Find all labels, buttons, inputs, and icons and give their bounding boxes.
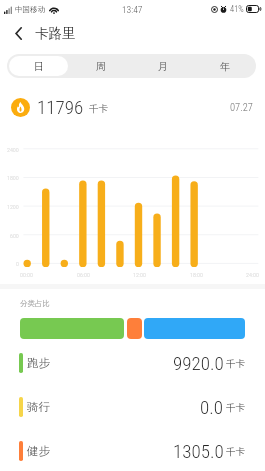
staticText: 1305.0: [173, 440, 224, 462]
staticText: 分类占比: [20, 299, 50, 308]
staticText: 健步: [27, 444, 50, 458]
button[interactable]: 跑步: [0, 341, 265, 385]
staticText: 跑步: [27, 356, 50, 370]
staticText: 12:00: [133, 271, 146, 278]
staticText: 13:47: [122, 4, 143, 15]
staticText: 600: [10, 232, 19, 239]
button[interactable]: 周: [70, 54, 132, 78]
staticText: 千卡: [89, 103, 108, 115]
staticText: 千卡: [226, 446, 245, 458]
staticText: 周: [96, 60, 106, 73]
staticText: 千卡: [226, 402, 245, 414]
staticText: 千卡: [226, 358, 245, 370]
staticText: 2400: [7, 146, 19, 153]
staticText: 00:00: [20, 271, 33, 278]
staticText: 1200: [7, 203, 19, 210]
staticText: 骑行: [27, 400, 50, 414]
staticText: 1800: [7, 174, 19, 181]
staticText: 月: [158, 60, 168, 73]
staticText: 24:00: [246, 271, 259, 278]
button[interactable]: 健步: [0, 429, 265, 471]
button[interactable]: Back: [9, 24, 28, 43]
button[interactable]: 年: [194, 54, 256, 78]
staticText: 07.27: [230, 101, 253, 113]
button[interactable]: 月: [132, 54, 194, 78]
staticText: 18:00: [190, 271, 203, 278]
staticText: 9920.0: [173, 352, 224, 374]
button[interactable]: 骑行: [0, 385, 265, 429]
staticText: 日: [34, 60, 44, 73]
staticText: 中国移动: [15, 5, 45, 14]
staticText: 卡路里: [35, 25, 76, 42]
staticText: 11796: [37, 96, 84, 118]
staticText: 06:00: [77, 271, 90, 278]
staticText: 0: [16, 260, 19, 267]
button[interactable]: 日: [7, 54, 70, 78]
staticText: 0.0: [200, 396, 224, 418]
staticText: 41%: [230, 4, 244, 14]
staticText: 年: [220, 60, 230, 73]
